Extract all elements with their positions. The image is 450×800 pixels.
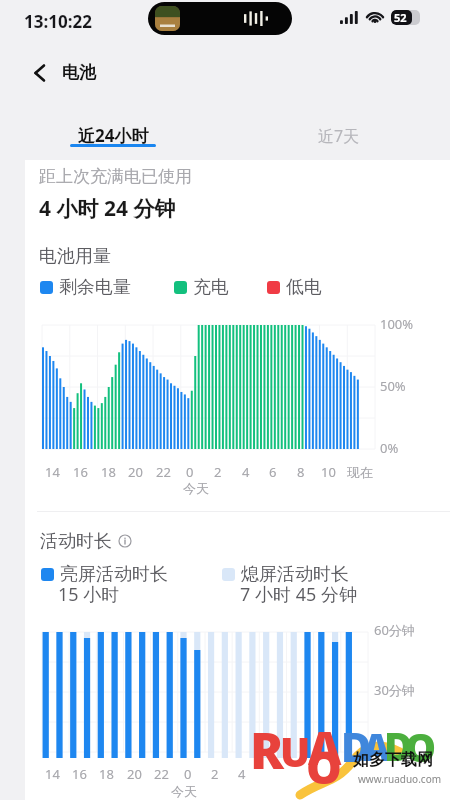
staticText: 今天 xyxy=(183,480,209,496)
staticText: 如多下载网 xyxy=(353,750,433,770)
staticText: www.ruaduo.com xyxy=(358,772,442,786)
staticText: 8 xyxy=(297,463,305,481)
staticText: 13:10:22 xyxy=(24,10,92,33)
staticText: O xyxy=(405,720,437,773)
staticText: 16 xyxy=(72,765,87,783)
staticText: U xyxy=(280,724,311,778)
staticText: 15 小时 xyxy=(58,582,120,607)
staticText: 2 xyxy=(214,463,222,481)
staticText: 充电 xyxy=(193,276,229,299)
staticText: 4 xyxy=(242,463,250,481)
staticText: 10 xyxy=(321,463,336,481)
staticText: O xyxy=(306,736,342,797)
button[interactable]: 近7天 xyxy=(228,104,450,158)
staticText: D xyxy=(341,718,372,774)
staticText: 30分钟 xyxy=(374,681,415,699)
staticText: 近7天 xyxy=(318,125,360,147)
staticText: 7 小时 45 分钟 xyxy=(240,582,357,607)
staticText: 16 xyxy=(73,463,88,481)
staticText: 距上次充满电已使用 xyxy=(39,166,192,187)
staticText: 0% xyxy=(380,439,399,457)
staticText: 电池用量 xyxy=(39,245,111,268)
staticText: A xyxy=(308,716,342,779)
staticText: 14 xyxy=(45,765,60,783)
staticText: A xyxy=(363,721,390,771)
staticText: 20 xyxy=(127,765,142,783)
staticText: 22 xyxy=(154,765,169,783)
staticText: 52 xyxy=(394,10,407,25)
staticText: 60分钟 xyxy=(374,621,415,639)
staticText: D xyxy=(384,719,413,772)
staticText: 现在 xyxy=(347,464,373,480)
staticText: 20 xyxy=(128,463,143,481)
button[interactable]: Info xyxy=(118,534,132,548)
staticText: 14 xyxy=(45,463,60,481)
staticText: 6 xyxy=(269,463,277,481)
staticText: 22 xyxy=(156,463,171,481)
button[interactable]: 近24小时 xyxy=(0,104,228,158)
staticText: 剩余电量 xyxy=(59,276,131,299)
staticText: R xyxy=(250,716,284,784)
staticText: 18 xyxy=(99,765,114,783)
staticText: 今天 xyxy=(171,783,197,799)
staticText: 熄屏活动时长 xyxy=(241,563,349,586)
staticText: 100% xyxy=(380,315,414,333)
staticText: 0 xyxy=(184,765,192,783)
button[interactable]: Back xyxy=(22,56,56,90)
staticText: 0 xyxy=(186,463,194,481)
staticText: 近24小时 xyxy=(78,124,149,147)
staticText: 电池 xyxy=(62,62,96,83)
staticText: 2 xyxy=(211,765,219,783)
staticText: 亮屏活动时长 xyxy=(60,563,168,586)
staticText: 18 xyxy=(101,463,116,481)
staticText: 活动时长 xyxy=(40,530,112,553)
staticText: 50% xyxy=(380,377,406,395)
staticText: 低电 xyxy=(286,276,322,299)
staticText: 4 小时 24 分钟 xyxy=(39,194,176,223)
staticText: 4 xyxy=(238,765,246,783)
